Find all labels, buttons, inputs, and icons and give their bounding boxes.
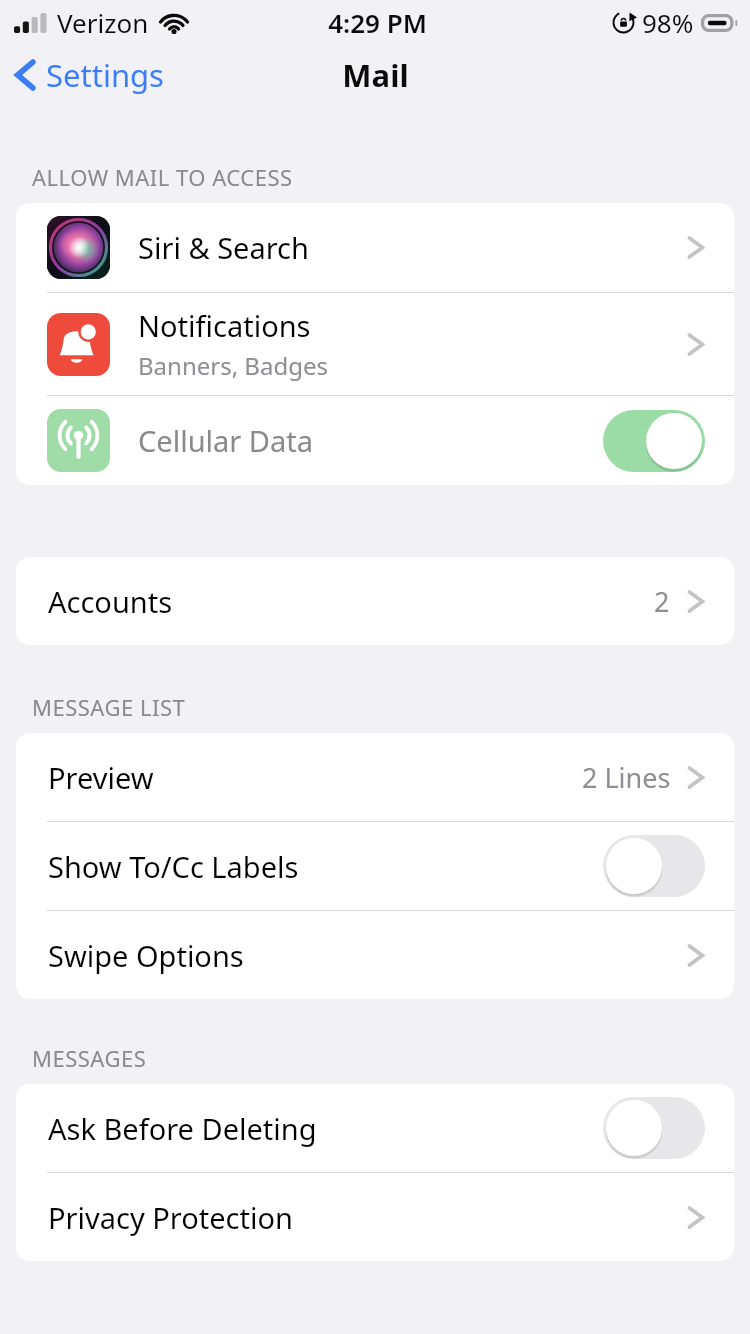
staticText: Show To/Cc Labels <box>48 847 299 886</box>
button[interactable]: Ask Before Deleting <box>16 1084 734 1172</box>
button[interactable]: Siri & Search <box>16 203 734 292</box>
button[interactable]: Show To/Cc Labels <box>16 822 734 910</box>
button[interactable]: Privacy Protection <box>16 1173 734 1261</box>
staticText: Privacy Protection <box>48 1198 293 1237</box>
staticText: 4:29 PM <box>328 5 427 40</box>
staticText: Ask Before Deleting <box>48 1109 317 1148</box>
staticText: Accounts <box>48 582 173 621</box>
staticText: Notifications <box>138 306 311 345</box>
staticText: 98% <box>642 5 694 40</box>
staticText: 2 <box>654 583 670 620</box>
button[interactable]: Preview <box>16 733 734 821</box>
button[interactable]: Accounts <box>16 557 734 645</box>
staticText: MESSAGES <box>32 1043 147 1073</box>
button[interactable]: Swipe Options <box>16 911 734 999</box>
staticText: ALLOW MAIL TO ACCESS <box>32 162 293 192</box>
staticText: 2 Lines <box>582 759 671 796</box>
staticText: Mail <box>342 54 409 96</box>
staticText: Verizon <box>57 5 149 40</box>
staticText: MESSAGE LIST <box>32 692 186 722</box>
staticText: Siri & Search <box>138 228 309 267</box>
staticText: Banners, Badges <box>138 349 328 382</box>
staticText: Swipe Options <box>48 936 244 975</box>
staticText: Settings <box>46 54 164 96</box>
button[interactable]: Cellular Data <box>16 396 734 485</box>
button[interactable]: Settings <box>0 47 178 103</box>
button[interactable]: Cellular Data <box>603 410 705 472</box>
button[interactable]: Show To/Cc Labels <box>603 835 705 897</box>
staticText: Cellular Data <box>138 421 314 460</box>
button[interactable]: Notifications <box>16 293 734 395</box>
staticText: Preview <box>48 758 154 797</box>
button[interactable]: Ask Before Deleting <box>603 1097 705 1159</box>
